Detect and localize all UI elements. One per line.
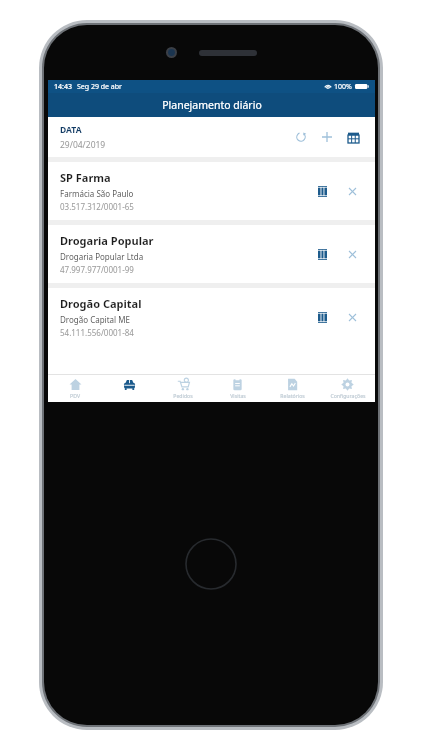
button[interactable]: Detalhes [311,306,333,328]
button[interactable]: Calendário [343,127,363,147]
staticText: Configurações [330,392,366,399]
staticText: Seg 29 de abr [77,82,122,92]
staticText: 54.111.556/0001-84 [60,327,134,338]
staticText: 14:43 [54,82,72,92]
button[interactable]: SP Farma [48,162,375,220]
button[interactable]: Atualizar [291,127,311,147]
staticText: Relatórios [280,392,305,399]
button[interactable]: Detalhes [311,180,333,202]
button[interactable]: Drogaria Popular [48,225,375,283]
button[interactable]: Remover [341,306,363,328]
staticText: 29/04/2019 [60,139,106,151]
button[interactable]: Detalhes [311,243,333,265]
button[interactable]: Pedidos [156,375,210,402]
staticText: Planejamento diário [162,98,262,112]
staticText: Farmácia São Paulo [60,188,134,199]
staticText: Drogaria Popular [60,233,154,248]
staticText: 47.997.977/0001-99 [60,264,134,275]
button[interactable]: Adicionar [317,127,337,147]
staticText: Visitas [230,392,246,399]
button[interactable]: Configurações [320,375,375,402]
staticText: Drogão Capital [60,296,142,311]
staticText: PDV [70,392,80,399]
button[interactable]: PDV [48,375,102,402]
staticText: SP Farma [60,170,111,185]
staticText: Drogaria Popular Ltda [60,251,144,262]
staticText: 100% [334,82,352,92]
button[interactable]: Remover [341,180,363,202]
staticText: Pedidos [173,392,193,399]
button[interactable]: Remover [341,243,363,265]
button[interactable]: Rotas [102,375,156,402]
button[interactable]: Drogão Capital [48,288,375,346]
staticText: 03.517.312/0001-65 [60,201,134,212]
button[interactable]: Relatórios [265,375,320,402]
staticText: Drogão Capital ME [60,314,130,325]
button[interactable]: Visitas [210,375,265,402]
staticText: DATA [60,124,82,136]
